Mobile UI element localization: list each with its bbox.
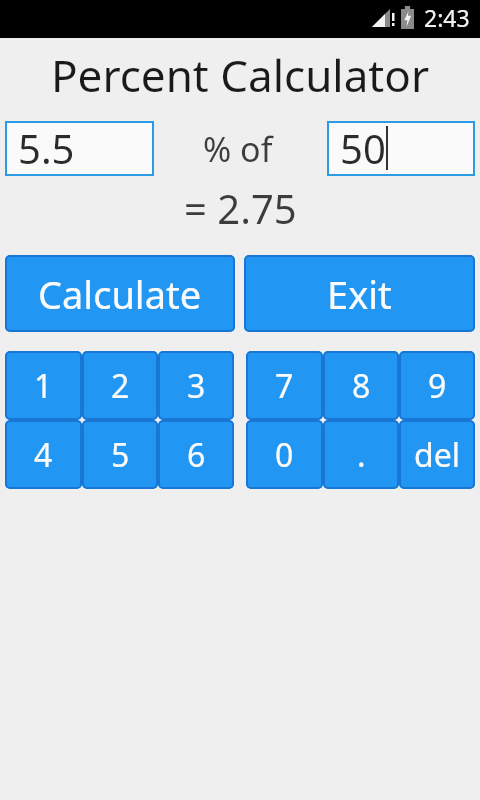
staticText: 3 bbox=[187, 364, 206, 408]
staticText: . bbox=[357, 433, 366, 477]
staticText: del bbox=[414, 433, 460, 477]
button[interactable]: 8 bbox=[323, 351, 399, 420]
staticText: 5.5 bbox=[18, 121, 75, 175]
staticText: Exit bbox=[327, 268, 392, 320]
button[interactable]: 5 bbox=[82, 420, 158, 489]
staticText: % of bbox=[203, 126, 273, 172]
button[interactable]: 9 bbox=[399, 351, 475, 420]
button[interactable]: 3 bbox=[158, 351, 234, 420]
staticText: 8 bbox=[352, 364, 371, 408]
staticText: 9 bbox=[428, 364, 447, 408]
button[interactable]: 50 bbox=[327, 121, 475, 176]
staticText: 6 bbox=[187, 433, 206, 477]
staticText: 5 bbox=[111, 433, 130, 477]
button[interactable]: Calculate bbox=[5, 255, 235, 332]
button[interactable]: 0 bbox=[246, 420, 323, 489]
button[interactable]: 6 bbox=[158, 420, 234, 489]
staticText: 0 bbox=[275, 433, 294, 477]
staticText: 4 bbox=[34, 433, 53, 477]
staticText: 1 bbox=[34, 364, 53, 408]
staticText: Percent Calculator bbox=[51, 45, 430, 105]
staticText: 2 bbox=[111, 364, 130, 408]
button[interactable]: 7 bbox=[246, 351, 323, 420]
staticText: 7 bbox=[275, 364, 294, 408]
staticText: = 2.75 bbox=[184, 181, 297, 232]
button[interactable]: 2 bbox=[82, 351, 158, 420]
staticText: 50 bbox=[340, 121, 386, 175]
button[interactable]: 1 bbox=[5, 351, 82, 420]
staticText: 2:43 bbox=[424, 2, 470, 33]
button[interactable]: del bbox=[399, 420, 475, 489]
button[interactable]: 5.5 bbox=[5, 121, 154, 176]
button[interactable]: Exit bbox=[244, 255, 475, 332]
staticText: Calculate bbox=[38, 268, 202, 320]
button[interactable]: 4 bbox=[5, 420, 82, 489]
button[interactable]: . bbox=[323, 420, 399, 489]
